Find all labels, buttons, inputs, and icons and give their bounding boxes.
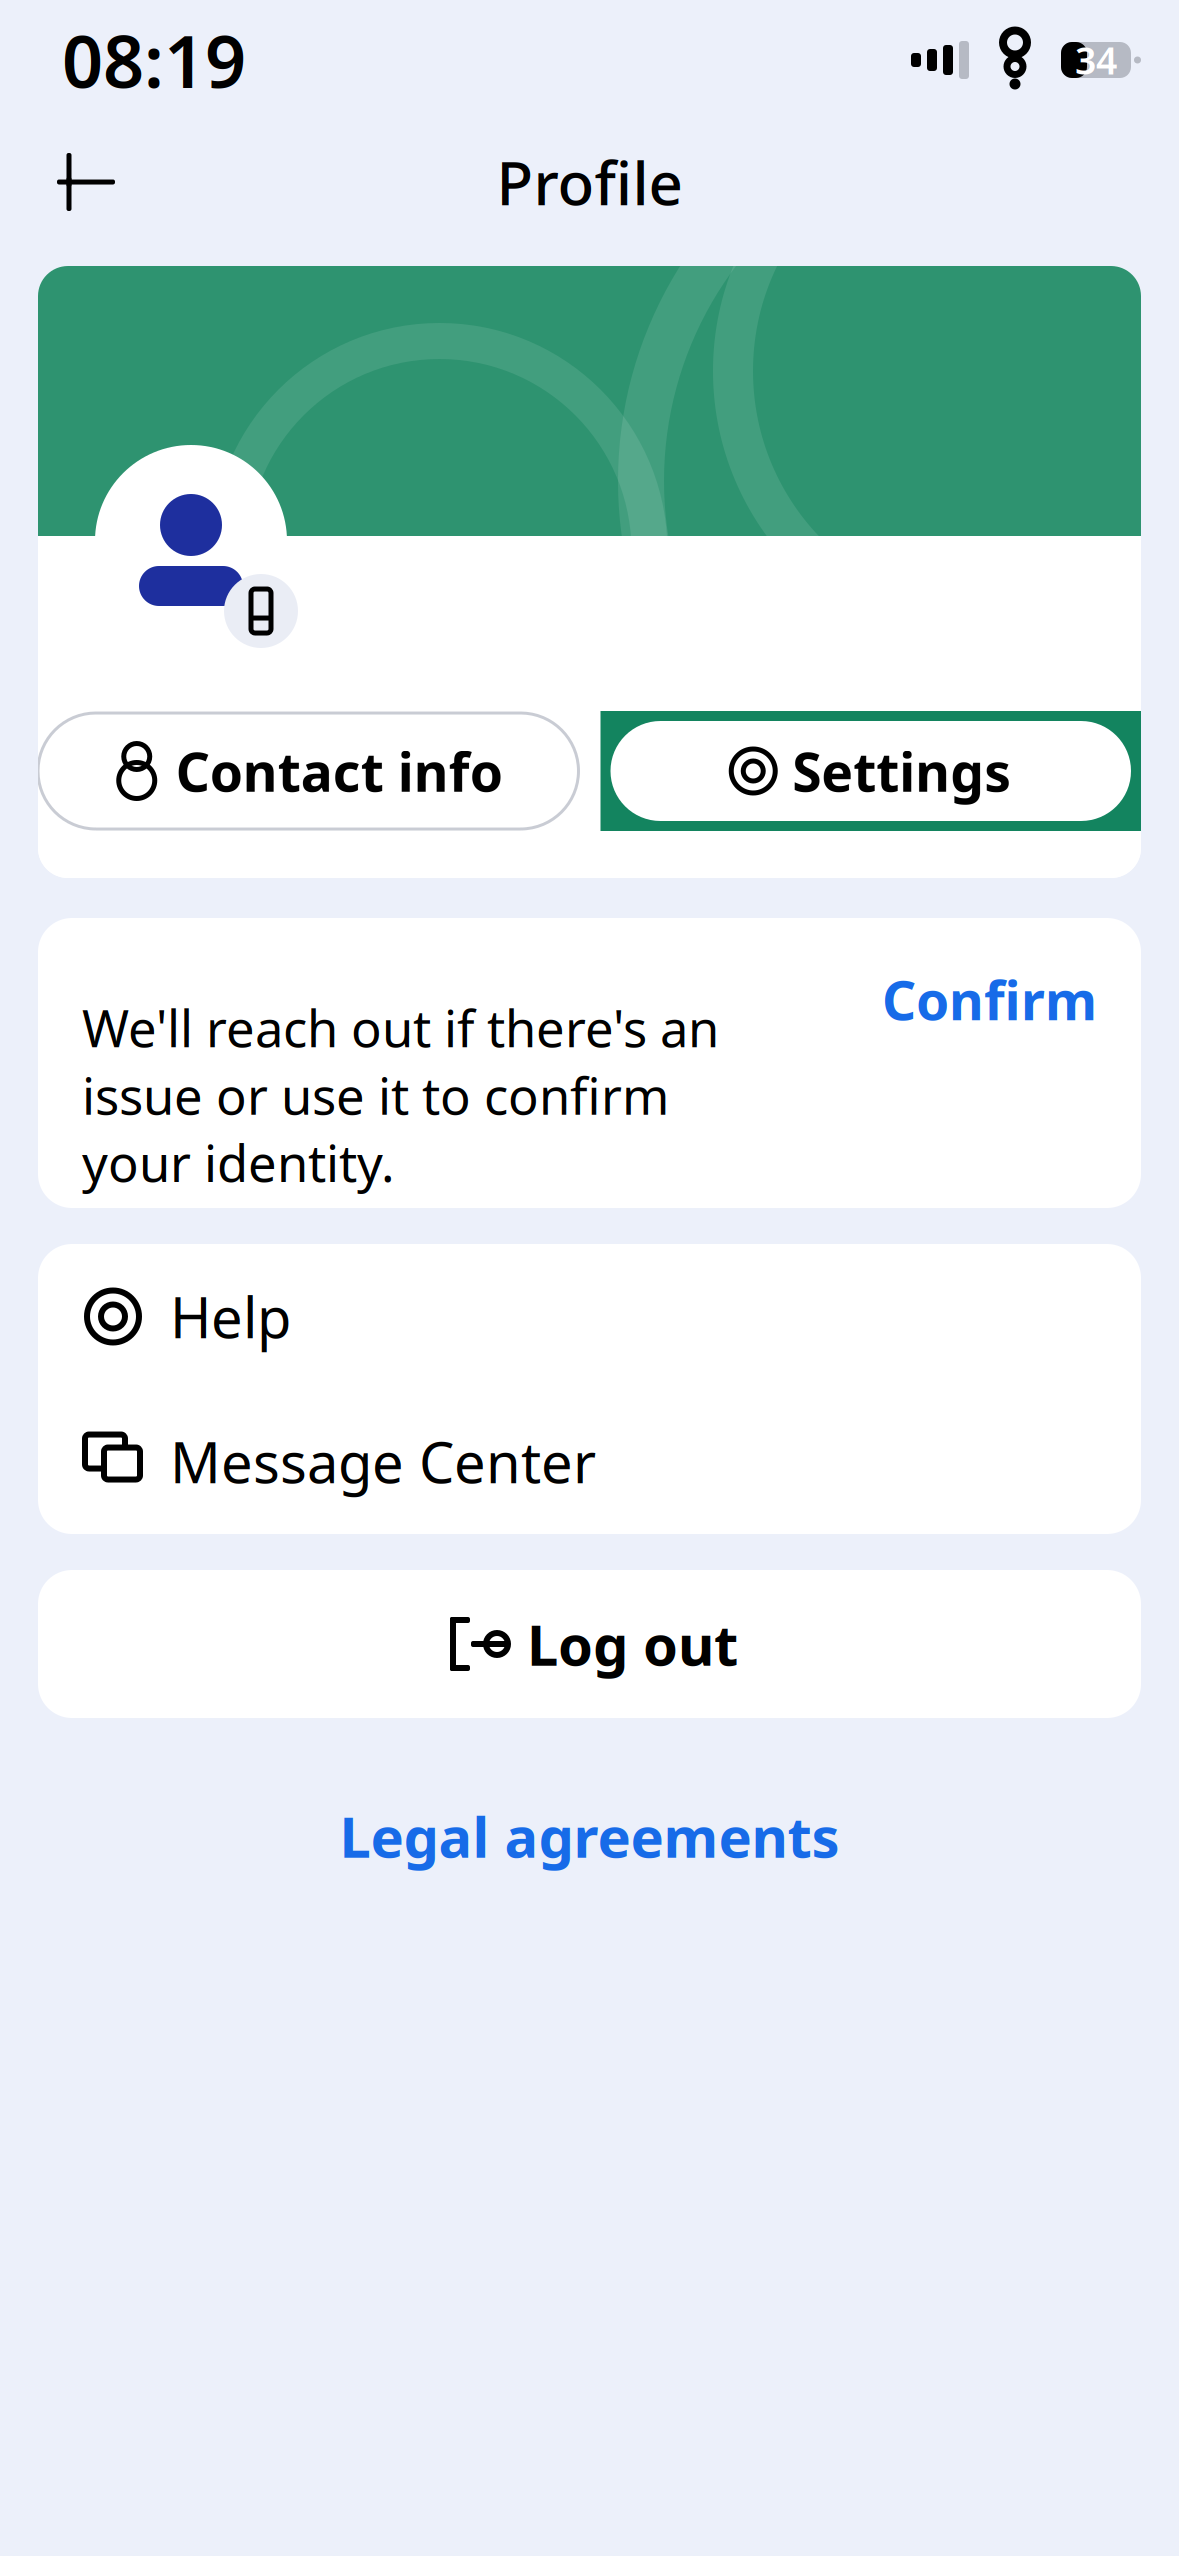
button[interactable]: Legal agreements: [38, 1796, 1141, 1876]
staticText: 34: [1075, 35, 1117, 85]
button[interactable]: Edit profile photo: [224, 574, 298, 648]
staticText: Legal agreements: [339, 1799, 839, 1873]
button[interactable]: Back: [38, 134, 134, 230]
staticText: Contact info: [176, 736, 503, 806]
button[interactable]: Confirm: [882, 930, 1097, 1035]
staticText: We'll reach out if there's an issue or u…: [82, 994, 719, 1196]
button[interactable]: Contact info: [38, 713, 578, 829]
staticText: Message Center: [170, 1424, 596, 1499]
staticText: Settings: [792, 736, 1011, 806]
button[interactable]: Help: [38, 1244, 1141, 1389]
button[interactable]: Message Center: [38, 1389, 1141, 1534]
staticText: Help: [170, 1279, 291, 1354]
staticText: 08:19: [62, 12, 246, 108]
button[interactable]: Settings: [600, 711, 1141, 831]
button[interactable]: Log out: [38, 1570, 1141, 1718]
staticText: Confirm: [882, 964, 1097, 1035]
staticText: Log out: [527, 1607, 738, 1681]
staticText: Profile: [496, 142, 682, 222]
